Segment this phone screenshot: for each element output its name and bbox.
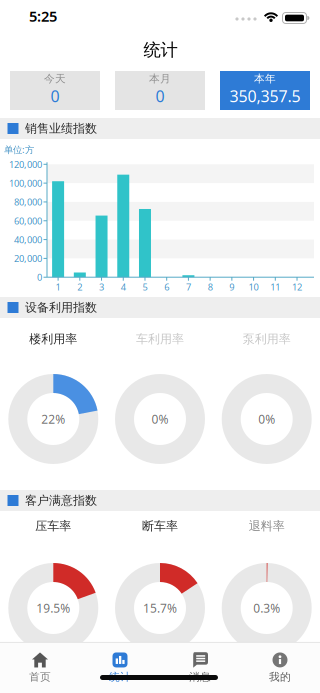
staticText: 单位:方 xyxy=(4,143,34,156)
button[interactable]: 统计 xyxy=(85,645,155,691)
staticText: 12 xyxy=(292,281,302,293)
staticText: 80,000 xyxy=(14,196,42,208)
staticText: 15.7% xyxy=(143,600,177,616)
staticText: 0% xyxy=(258,411,275,427)
staticText: 19.5% xyxy=(36,600,70,616)
staticText: 0% xyxy=(151,411,168,427)
staticText: 0.3% xyxy=(253,600,280,616)
staticText: 100,000 xyxy=(9,177,42,189)
staticText: 10 xyxy=(249,281,259,293)
staticText: 设备利用指数 xyxy=(25,300,97,315)
staticText: 车利用率 xyxy=(136,332,184,346)
staticText: 6 xyxy=(164,281,169,293)
staticText: 2 xyxy=(77,281,82,293)
staticText: 60,000 xyxy=(14,215,42,227)
staticText: 本年 xyxy=(254,72,276,85)
staticText: 8 xyxy=(208,281,213,293)
staticText: 1 xyxy=(56,281,61,293)
staticText: 退料率 xyxy=(249,519,285,533)
button[interactable]: 本月 xyxy=(115,71,205,110)
staticText: 压车率 xyxy=(35,519,71,533)
staticText: 本月 xyxy=(149,72,171,85)
staticText: 客户满意指数 xyxy=(25,493,97,508)
staticText: 断车率 xyxy=(142,519,178,533)
staticText: 统计 xyxy=(109,670,131,683)
staticText: 泵利用率 xyxy=(243,332,291,346)
staticText: 3 xyxy=(99,281,104,293)
staticText: 40,000 xyxy=(14,233,42,246)
staticText: 5:25 xyxy=(29,6,57,26)
staticText: 0 xyxy=(155,85,164,107)
staticText: 4 xyxy=(121,281,126,293)
staticText: 我的 xyxy=(269,670,291,683)
staticText: 120,000 xyxy=(9,158,42,170)
staticText: 22% xyxy=(41,411,65,427)
staticText: 统计 xyxy=(143,39,177,61)
staticText: 销售业绩指数 xyxy=(25,121,97,136)
staticText: 5 xyxy=(142,281,147,293)
staticText: 楼利用率 xyxy=(29,332,77,346)
button[interactable]: 首页 xyxy=(5,645,75,691)
staticText: 11 xyxy=(270,281,280,293)
staticText: 首页 xyxy=(29,670,51,683)
staticText: 0 xyxy=(50,85,59,107)
staticText: 0 xyxy=(37,271,42,283)
staticText: 消息 xyxy=(189,670,211,683)
staticText: 20,000 xyxy=(14,252,42,265)
button[interactable]: 消息 xyxy=(165,645,235,691)
button[interactable]: 本年 xyxy=(220,71,310,110)
staticText: 7 xyxy=(186,281,191,293)
button[interactable]: 我的 xyxy=(245,645,315,691)
button[interactable]: 今天 xyxy=(10,71,100,110)
staticText: 9 xyxy=(229,281,234,293)
staticText: 今天 xyxy=(44,72,66,85)
staticText: 350,357.5 xyxy=(229,85,300,107)
